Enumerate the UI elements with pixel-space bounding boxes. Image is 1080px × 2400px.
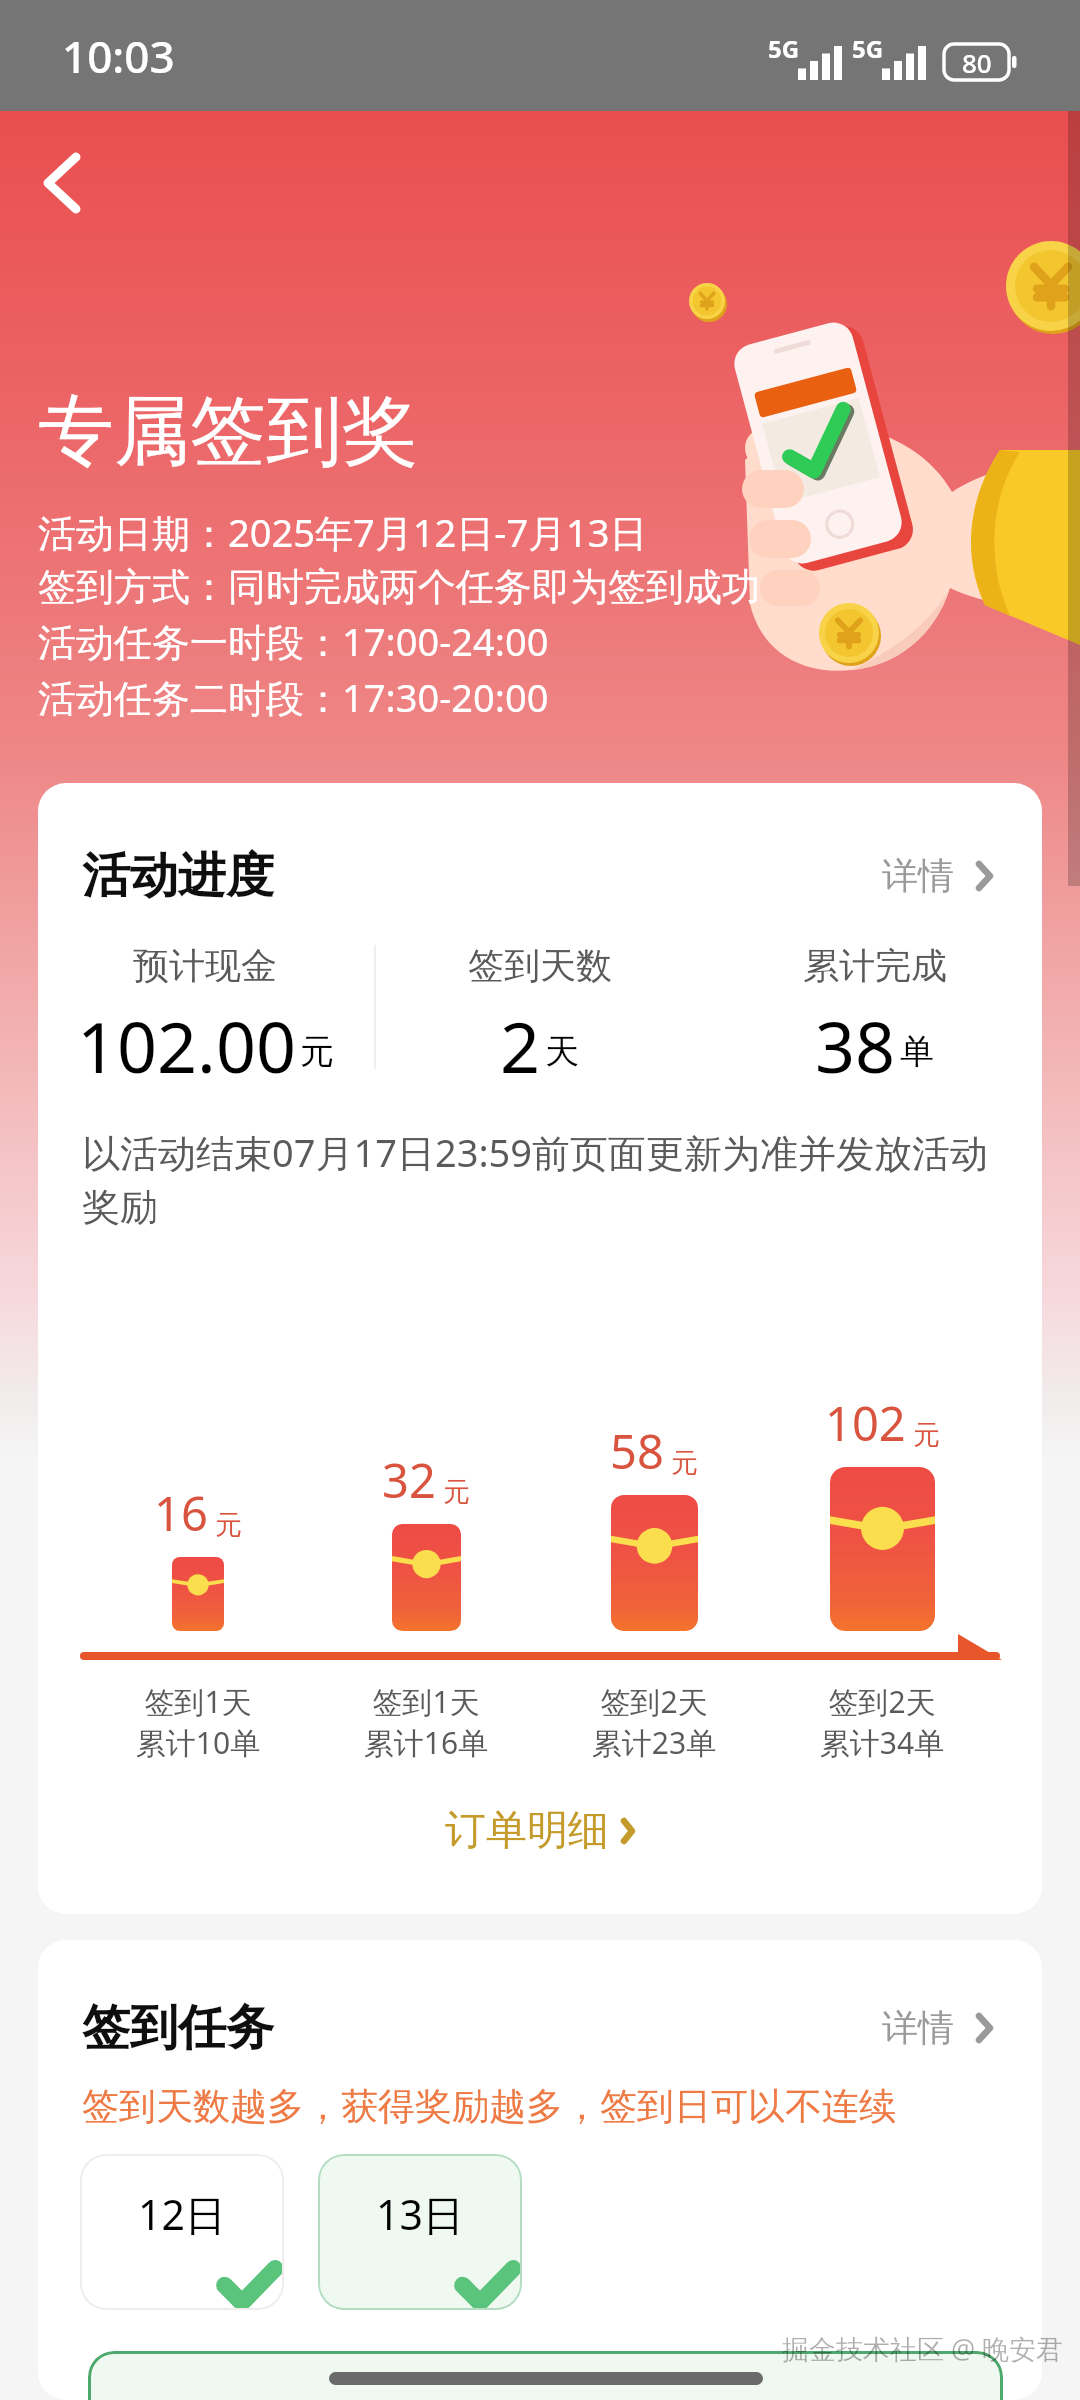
staticText: 详情 [882, 2005, 954, 2050]
staticText: 13日 [376, 2186, 464, 2242]
staticText: 5G [768, 32, 800, 65]
button[interactable]: 详情 [876, 845, 1010, 906]
staticText: 以活动结束07月17日23:59前页面更新为准并发放活动奖励 [82, 1126, 998, 1232]
staticText: 签到2天 累计23单 [540, 1681, 768, 1763]
button[interactable]: 13日 [318, 2154, 522, 2310]
button[interactable]: Back [0, 122, 124, 244]
staticText: 元 [671, 1446, 698, 1480]
staticText: 元 [443, 1475, 470, 1509]
staticText: 38 [815, 998, 896, 1079]
staticText: 签到1天 累计16单 [312, 1681, 540, 1763]
staticText: 80 [962, 45, 992, 80]
staticText: 32 [382, 1448, 436, 1512]
staticText: 天 [545, 1030, 579, 1073]
button[interactable]: 12日 [80, 2154, 284, 2310]
staticText: 活动进度 [82, 846, 274, 906]
staticText: 签到天数越多，获得奖励越多，签到日可以不连续 [82, 2083, 896, 2130]
staticText: 预计现金 [133, 943, 277, 988]
staticText: 102.00 [77, 998, 296, 1079]
staticText: 元 [913, 1418, 940, 1452]
staticText: 累计完成 [803, 943, 947, 988]
staticText: 掘金技术社区 @ 晚安君 [782, 2330, 1064, 2367]
staticText: 签到天数 [468, 943, 612, 988]
button[interactable]: 订单明细 [38, 1795, 1042, 1867]
staticText: 元 [300, 1030, 334, 1073]
staticText: 订单明细 [445, 1805, 609, 1857]
staticText: 16 [154, 1481, 208, 1545]
staticText: 签到任务 [82, 1998, 274, 2058]
staticText: 专属签到奖 [38, 384, 418, 480]
staticText: 签到2天 累计34单 [768, 1681, 996, 1763]
staticText: 详情 [882, 853, 954, 898]
staticText: 2 [500, 998, 541, 1079]
staticText: 12日 [138, 2186, 226, 2242]
staticText: 单 [900, 1030, 934, 1073]
staticText: 102 [825, 1391, 906, 1455]
staticText: 签到1天 累计10单 [84, 1681, 312, 1763]
button[interactable]: 详情 [876, 1997, 1010, 2058]
staticText: 元 [215, 1508, 242, 1542]
staticText: 10:03 [62, 26, 175, 86]
staticText: 58 [610, 1419, 664, 1483]
staticText: 活动日期：2025年7月12日-7月13日 签到方式：同时完成两个任务即为签到成… [38, 506, 760, 723]
staticText: 5G [852, 32, 884, 65]
